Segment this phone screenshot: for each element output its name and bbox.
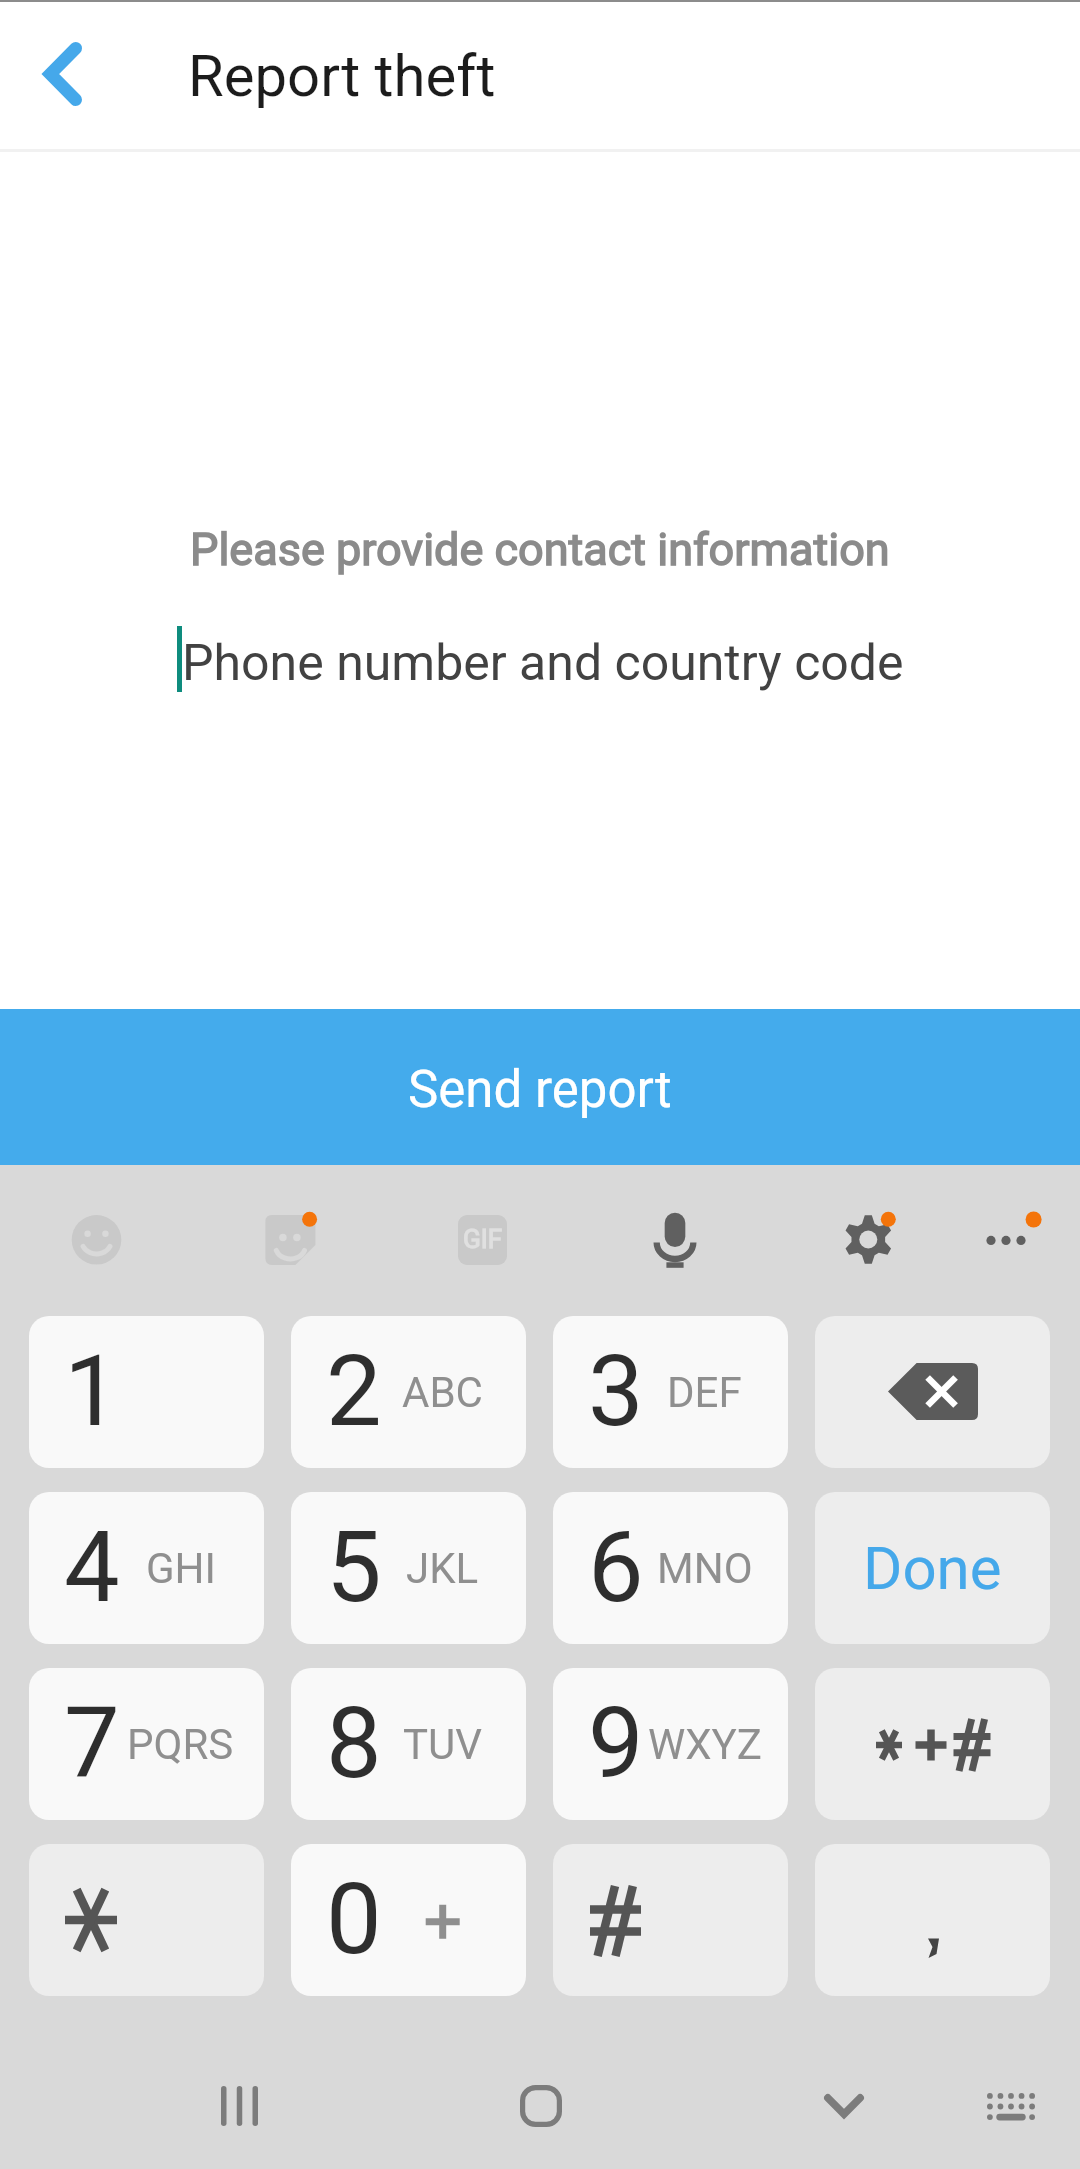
staticText: PQRS	[127, 1720, 234, 1769]
staticText: Send report	[408, 1060, 672, 1120]
button[interactable]: 8	[291, 1668, 526, 1820]
staticText: Report theft	[188, 42, 496, 110]
staticText: 2	[326, 1333, 382, 1449]
staticText: ABC	[402, 1368, 483, 1417]
button[interactable]: Change keyboard	[941, 2046, 1080, 2166]
button[interactable]: 0	[291, 1844, 526, 1996]
staticText: Please provide contact information	[190, 523, 890, 576]
button[interactable]: More options	[948, 1165, 1068, 1316]
staticText: 4	[64, 1509, 120, 1625]
button[interactable]: Send report	[0, 1009, 1080, 1165]
staticText: Done	[863, 1533, 1002, 1603]
button[interactable]: Back	[0, 0, 124, 148]
button[interactable]: 5	[291, 1492, 526, 1644]
staticText: 3	[588, 1333, 644, 1449]
button[interactable]: Done	[815, 1492, 1050, 1644]
staticText: 8	[326, 1685, 382, 1801]
staticText: JKL	[406, 1544, 479, 1593]
staticText: 6	[588, 1509, 644, 1625]
staticText: GIF	[463, 1224, 503, 1254]
staticText: 1	[64, 1333, 120, 1449]
button[interactable]	[815, 1844, 1050, 1996]
button[interactable]: Home	[471, 2046, 611, 2166]
staticText: 7	[64, 1685, 120, 1801]
button[interactable]	[815, 1668, 1050, 1820]
button[interactable]: 2	[291, 1316, 526, 1468]
button[interactable]: 6	[553, 1492, 788, 1644]
button[interactable]: Keyboard settings	[808, 1165, 928, 1316]
button[interactable]	[553, 1844, 788, 1996]
other: Backspace	[887, 1364, 978, 1421]
staticText: 5	[326, 1509, 382, 1625]
staticText: Phone number and country code	[182, 634, 904, 693]
staticText: GHI	[146, 1544, 216, 1593]
button[interactable]: 9	[553, 1668, 788, 1820]
button[interactable]: Stickers	[230, 1165, 350, 1316]
button[interactable]: 3	[553, 1316, 788, 1468]
staticText: DEF	[667, 1368, 742, 1417]
staticText: TUV	[403, 1720, 483, 1769]
button[interactable]: Backspace	[815, 1316, 1050, 1468]
button[interactable]: Voice input	[615, 1165, 735, 1316]
button[interactable]	[29, 1844, 264, 1996]
button[interactable]: GIF keyboard	[423, 1165, 543, 1316]
button[interactable]: Recent apps	[169, 2046, 309, 2166]
staticText: 9	[588, 1685, 644, 1801]
button[interactable]: 4	[29, 1492, 264, 1644]
staticText: MNO	[657, 1544, 753, 1593]
button[interactable]: 7	[29, 1668, 264, 1820]
button[interactable]: Hide keyboard	[774, 2046, 914, 2166]
button[interactable]: 1	[29, 1316, 264, 1468]
staticText: 0	[326, 1861, 382, 1977]
staticText: WXYZ	[648, 1720, 762, 1769]
button[interactable]: Emoji	[36, 1165, 156, 1316]
